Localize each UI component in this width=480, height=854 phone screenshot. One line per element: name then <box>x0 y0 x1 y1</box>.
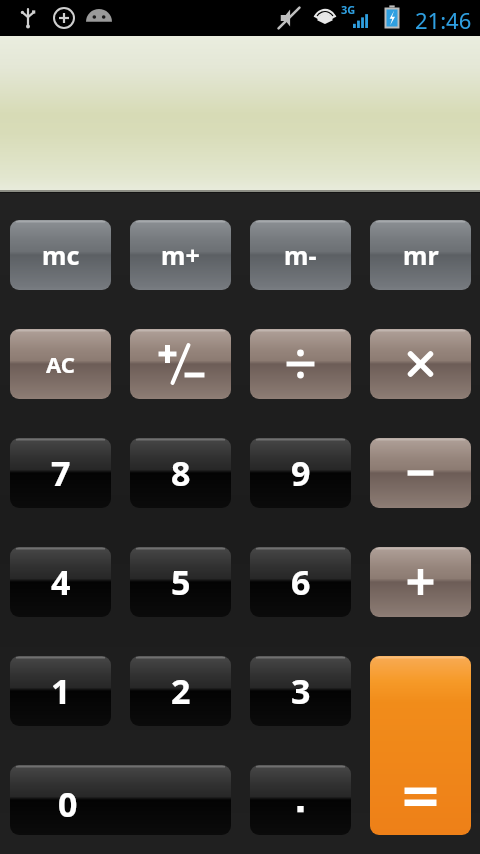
button[interactable]: Equals <box>370 656 471 835</box>
staticText: 6 <box>291 559 311 605</box>
staticText: m- <box>284 238 317 272</box>
staticText: m+ <box>161 238 200 272</box>
button[interactable]: 8 <box>130 438 231 508</box>
button[interactable]: Multiply <box>370 329 471 399</box>
button[interactable]: 7 <box>10 438 111 508</box>
button[interactable]: m- <box>250 220 351 290</box>
button[interactable]: 4 <box>10 547 111 617</box>
button[interactable]: 6 <box>250 547 351 617</box>
button[interactable]: mc <box>10 220 111 290</box>
button[interactable]: 5 <box>130 547 231 617</box>
button[interactable]: Divide <box>250 329 351 399</box>
button[interactable]: 2 <box>130 656 231 726</box>
staticText: mr <box>403 238 439 272</box>
staticText: 0 <box>58 781 78 827</box>
staticText: 4 <box>51 559 71 605</box>
staticText: 3 <box>291 668 311 714</box>
button[interactable]: Plus <box>370 547 471 617</box>
staticText: 21:46 <box>415 5 472 35</box>
button[interactable]: mr <box>370 220 471 290</box>
staticText: 8 <box>171 450 191 496</box>
button[interactable]: AC <box>10 329 111 399</box>
button[interactable]: 9 <box>250 438 351 508</box>
staticText: 5 <box>171 559 191 605</box>
staticText: AC <box>46 349 75 379</box>
staticText: 1 <box>51 668 71 714</box>
button[interactable]: 1 <box>10 656 111 726</box>
button[interactable]: m+ <box>130 220 231 290</box>
staticText: 7 <box>51 450 71 496</box>
button[interactable]: Plus minus <box>130 329 231 399</box>
button[interactable]: 3 <box>250 656 351 726</box>
button[interactable]: Decimal point <box>250 765 351 835</box>
staticText: 9 <box>291 450 311 496</box>
button[interactable]: Zero <box>10 765 231 835</box>
staticText: mc <box>42 238 80 272</box>
button[interactable]: Minus <box>370 438 471 508</box>
staticText: 3G <box>341 2 356 17</box>
staticText: 2 <box>171 668 191 714</box>
